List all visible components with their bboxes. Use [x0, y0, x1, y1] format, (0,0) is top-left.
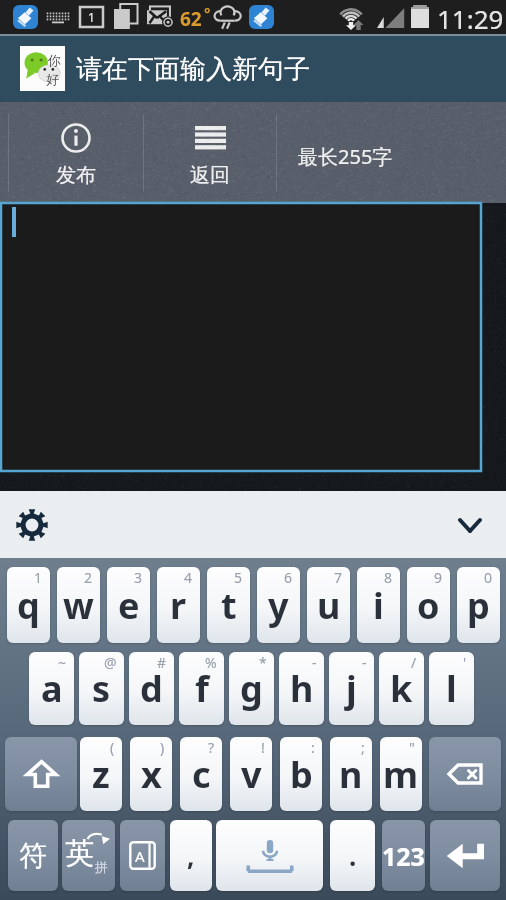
button[interactable]: Shift	[5, 737, 77, 811]
staticText: i	[373, 581, 384, 630]
staticText: 7	[334, 568, 343, 587]
button[interactable]: 7	[307, 567, 350, 643]
button[interactable]	[1, 203, 481, 471]
button[interactable]: @	[79, 652, 124, 725]
staticText: '	[463, 653, 467, 672]
staticText: .	[349, 838, 357, 873]
staticText: A	[135, 846, 145, 866]
button[interactable]: 8	[357, 567, 400, 643]
staticText: q	[17, 581, 40, 630]
staticText: n	[339, 750, 363, 799]
button[interactable]: -	[329, 652, 374, 725]
button[interactable]: :	[280, 737, 322, 811]
staticText: g	[240, 664, 263, 713]
staticText: ?	[208, 738, 215, 757]
staticText: 8	[384, 568, 393, 587]
button[interactable]: *	[229, 652, 274, 725]
button[interactable]: 6	[257, 567, 300, 643]
button[interactable]: ;	[330, 737, 372, 811]
staticText: 返回	[190, 163, 230, 188]
button[interactable]: Numbers	[382, 820, 425, 891]
staticText: :	[311, 738, 315, 757]
button[interactable]: %	[179, 652, 224, 725]
button[interactable]: )	[130, 737, 172, 811]
staticText: @	[104, 653, 117, 672]
staticText: /	[411, 653, 417, 672]
staticText: ,	[187, 838, 195, 873]
button[interactable]: 1	[7, 567, 50, 643]
staticText: 1	[34, 568, 43, 587]
button[interactable]: Space and voice input	[216, 820, 323, 891]
button[interactable]: (	[80, 737, 122, 811]
staticText: t	[221, 581, 237, 630]
staticText: *	[259, 653, 267, 672]
button[interactable]: #	[129, 652, 174, 725]
staticText: 62	[180, 6, 202, 32]
staticText: h	[290, 664, 314, 713]
staticText: 11:29	[437, 1, 504, 35]
button[interactable]: 9	[407, 567, 450, 643]
staticText: 1	[88, 9, 95, 25]
staticText: 拼	[95, 859, 108, 875]
staticText: m	[383, 750, 419, 799]
button[interactable]: .	[330, 820, 375, 891]
staticText: 发布	[56, 163, 96, 188]
button[interactable]: !	[230, 737, 272, 811]
staticText: s	[92, 664, 111, 713]
button[interactable]: Symbols	[8, 820, 58, 891]
button[interactable]: Enter	[430, 820, 500, 891]
staticText: l	[446, 664, 457, 713]
staticText: 9	[434, 568, 443, 587]
staticText: 5	[234, 568, 243, 587]
staticText: ;	[361, 738, 365, 757]
button[interactable]: Keyboard settings	[11, 504, 53, 546]
button[interactable]: 0	[457, 567, 500, 643]
button[interactable]: Input method	[120, 820, 165, 891]
staticText: b	[290, 750, 313, 799]
staticText: 符	[19, 838, 47, 873]
button[interactable]: '	[429, 652, 474, 725]
staticText: "	[409, 738, 415, 757]
button[interactable]: -	[279, 652, 324, 725]
button[interactable]: "	[380, 737, 422, 811]
button[interactable]: 返回	[144, 102, 276, 203]
staticText: k	[390, 664, 413, 713]
staticText: c	[192, 750, 211, 799]
staticText: j	[346, 664, 357, 713]
button[interactable]: ,	[170, 820, 212, 891]
staticText: -	[362, 653, 367, 672]
button[interactable]: 2	[57, 567, 100, 643]
staticText: e	[118, 581, 140, 630]
button[interactable]: Backspace	[429, 737, 501, 811]
button[interactable]: Hide keyboard	[450, 505, 490, 545]
button[interactable]: 4	[157, 567, 200, 643]
staticText: 123	[382, 839, 425, 873]
button[interactable]: 3	[107, 567, 150, 643]
staticText: ~	[58, 653, 67, 672]
staticText: 英	[65, 835, 94, 872]
staticText: w	[63, 581, 94, 630]
staticText: -	[312, 653, 317, 672]
staticText: 6	[284, 568, 293, 587]
staticText: y	[268, 581, 289, 630]
staticText: 2	[84, 568, 93, 587]
staticText: v	[241, 750, 262, 799]
staticText: )	[160, 738, 165, 757]
button[interactable]: 5	[207, 567, 250, 643]
staticText: °	[204, 3, 211, 23]
staticText: (	[110, 738, 115, 757]
button[interactable]: ~	[29, 652, 74, 725]
staticText: 0	[484, 568, 493, 587]
staticText: f	[195, 664, 209, 713]
staticText: d	[140, 664, 163, 713]
staticText: 最长255字	[298, 143, 393, 170]
staticText: %	[205, 653, 217, 672]
staticText: p	[467, 581, 490, 630]
button[interactable]: ?	[180, 737, 222, 811]
staticText: a	[41, 664, 63, 713]
staticText: 你	[48, 52, 61, 68]
button[interactable]: 发布	[9, 102, 143, 203]
staticText: 3	[134, 568, 143, 587]
button[interactable]: Switch language	[62, 820, 115, 891]
button[interactable]: /	[379, 652, 424, 725]
